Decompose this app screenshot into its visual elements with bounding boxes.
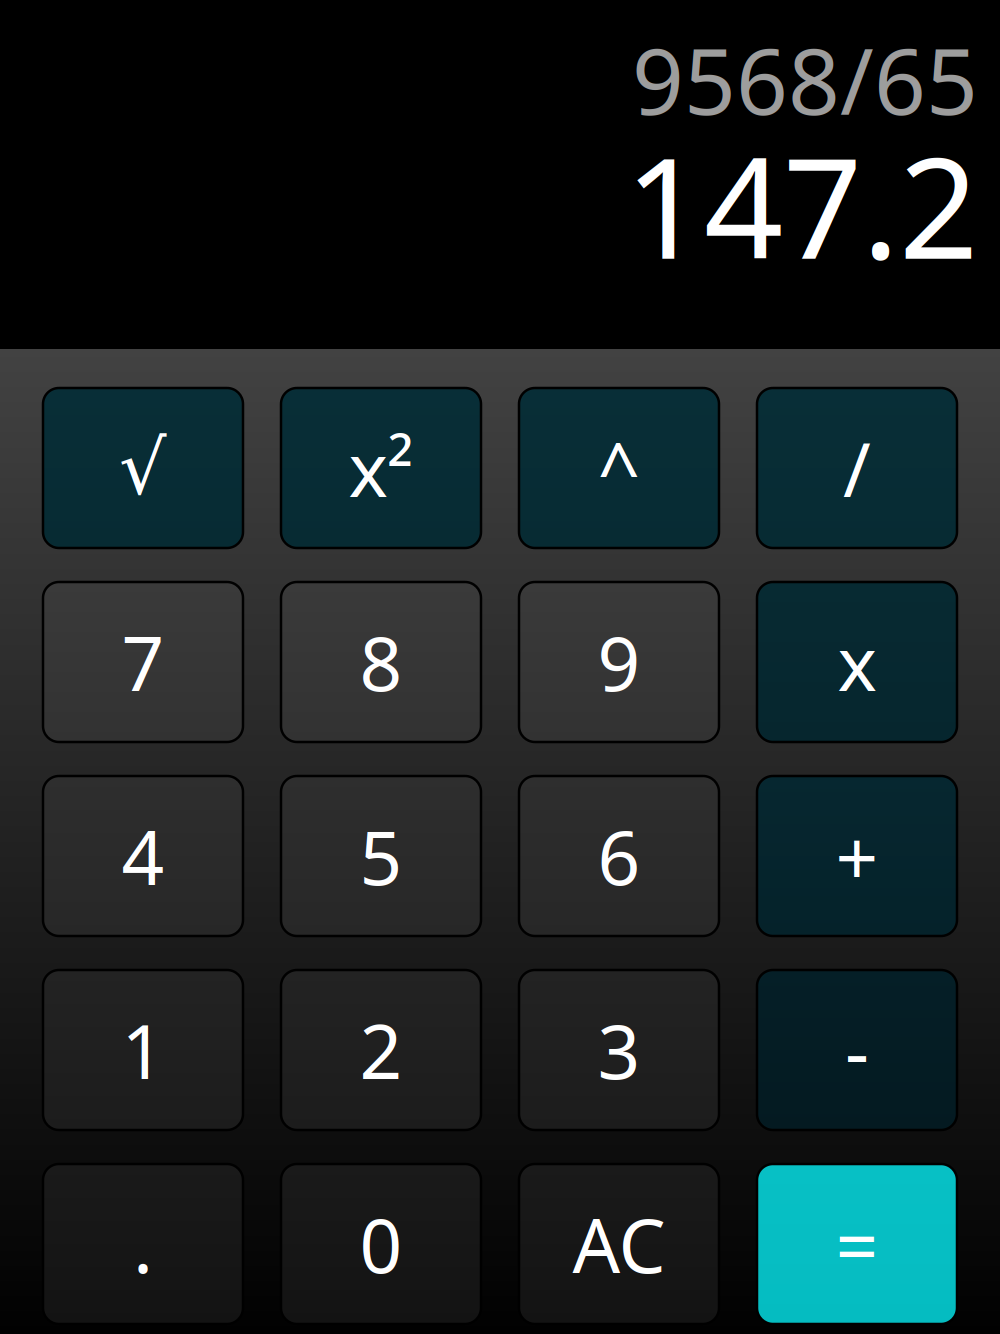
button[interactable]: 3 <box>519 970 719 1130</box>
staticText: 3 <box>597 1000 640 1100</box>
button[interactable]: Divide <box>757 388 957 548</box>
button[interactable]: 4 <box>43 776 243 936</box>
staticText: 8 <box>359 612 402 712</box>
staticText: 147.2 <box>625 113 978 297</box>
staticText: = <box>835 1194 878 1294</box>
button[interactable]: 0 <box>281 1164 481 1324</box>
staticText: x² <box>348 418 413 518</box>
staticText: 6 <box>597 806 640 906</box>
button[interactable]: All clear <box>519 1164 719 1324</box>
button[interactable]: Square root <box>43 388 243 548</box>
staticText: x <box>837 612 876 712</box>
staticText: - <box>845 1000 869 1100</box>
button[interactable]: Squared <box>281 388 481 548</box>
staticText: 4 <box>121 806 164 906</box>
button[interactable]: 1 <box>43 970 243 1130</box>
staticText: 1 <box>121 1000 164 1100</box>
staticText: √ <box>119 426 167 510</box>
staticText: 0 <box>359 1194 402 1294</box>
staticText: ^ <box>597 418 640 518</box>
button[interactable]: 9 <box>519 582 719 742</box>
button[interactable]: Multiply <box>757 582 957 742</box>
button[interactable]: Add <box>757 776 957 936</box>
staticText: AC <box>572 1194 665 1294</box>
button[interactable]: 2 <box>281 970 481 1130</box>
staticText: 7 <box>121 612 164 712</box>
button[interactable]: 6 <box>519 776 719 936</box>
button[interactable]: Power <box>519 388 719 548</box>
button[interactable]: Subtract <box>757 970 957 1130</box>
staticText: 5 <box>359 806 402 906</box>
staticText: . <box>133 1194 153 1294</box>
staticText: / <box>843 418 871 518</box>
button[interactable]: Decimal point <box>43 1164 243 1324</box>
staticText: 9 <box>597 612 640 712</box>
button[interactable]: Equals <box>757 1164 957 1324</box>
staticText: + <box>835 806 878 906</box>
staticText: 2 <box>359 1000 402 1100</box>
button[interactable]: 7 <box>43 582 243 742</box>
button[interactable]: 8 <box>281 582 481 742</box>
button[interactable]: 5 <box>281 776 481 936</box>
staticText: 9568/65 <box>632 19 978 140</box>
